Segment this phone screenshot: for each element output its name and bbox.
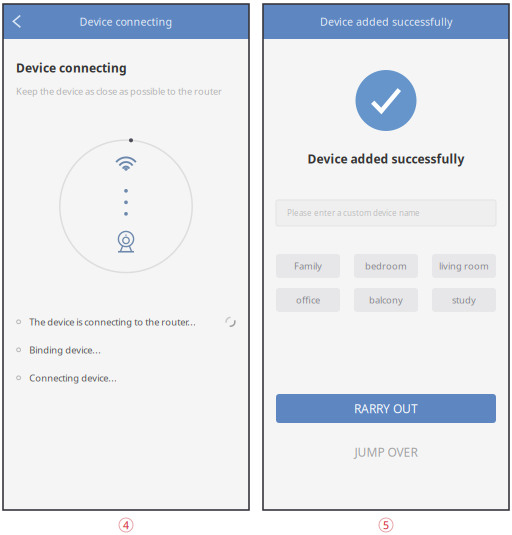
staticText: RARRY OUT bbox=[354, 400, 418, 416]
button[interactable]: Family bbox=[276, 254, 340, 278]
staticText: Binding device... bbox=[29, 344, 101, 356]
button[interactable]: RARRY OUT bbox=[276, 394, 496, 423]
button[interactable]: study bbox=[432, 288, 496, 312]
staticText: office bbox=[296, 294, 320, 306]
button[interactable]: JUMP OVER bbox=[276, 437, 496, 467]
button[interactable]: living room bbox=[432, 254, 496, 278]
staticText: Keep the device as close as possible to … bbox=[16, 85, 222, 97]
staticText: Device added successfully bbox=[320, 14, 452, 29]
staticText: Family bbox=[294, 260, 322, 272]
staticText: Device added successfully bbox=[307, 151, 464, 167]
staticText: The device is connecting to the router..… bbox=[29, 316, 196, 328]
button[interactable]: Back bbox=[3, 4, 31, 39]
button[interactable]: balcony bbox=[354, 288, 418, 312]
staticText: Connecting device... bbox=[29, 372, 117, 384]
button[interactable]: office bbox=[276, 288, 340, 312]
staticText: bedroom bbox=[365, 260, 407, 272]
staticText: Please enter a custom device name bbox=[287, 208, 420, 218]
staticText: Device connecting bbox=[79, 14, 172, 29]
staticText: living room bbox=[439, 260, 489, 272]
staticText: JUMP OVER bbox=[354, 444, 417, 460]
button[interactable]: bedroom bbox=[354, 254, 418, 278]
staticText: Device connecting bbox=[16, 60, 127, 76]
button[interactable]: Please enter a custom device name bbox=[276, 200, 496, 226]
staticText: study bbox=[452, 294, 476, 306]
staticText: balcony bbox=[369, 294, 403, 306]
staticText: 5 bbox=[383, 518, 389, 532]
staticText: 4 bbox=[123, 518, 129, 532]
